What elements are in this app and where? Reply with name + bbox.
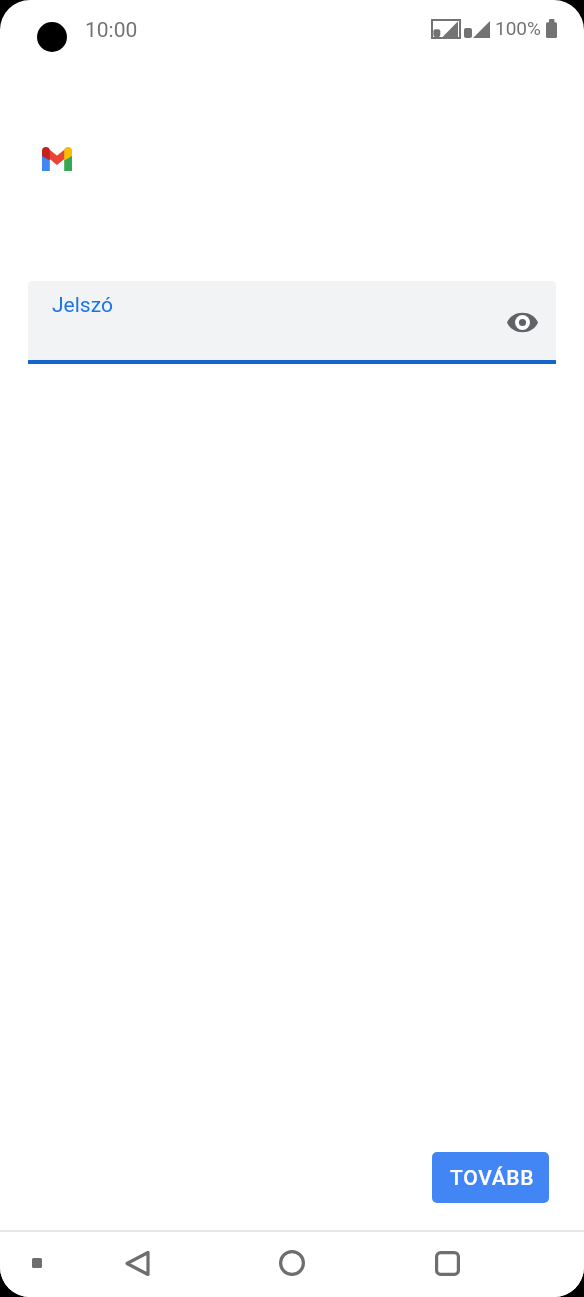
button[interactable]: Home [267, 1238, 317, 1288]
button[interactable]: Back [112, 1238, 162, 1288]
staticText: 100% [495, 17, 541, 39]
button[interactable]: Recent apps [422, 1238, 472, 1288]
staticText: 10:00 [85, 18, 138, 43]
button[interactable]: Show password [497, 297, 547, 347]
button[interactable]: Hide keyboard [12, 1238, 62, 1288]
staticText: Jelszó [52, 293, 113, 318]
button[interactable]: Jelszó [28, 281, 556, 360]
staticText: TOVÁBB [450, 1166, 535, 1191]
button[interactable]: TOVÁBB [432, 1152, 549, 1203]
